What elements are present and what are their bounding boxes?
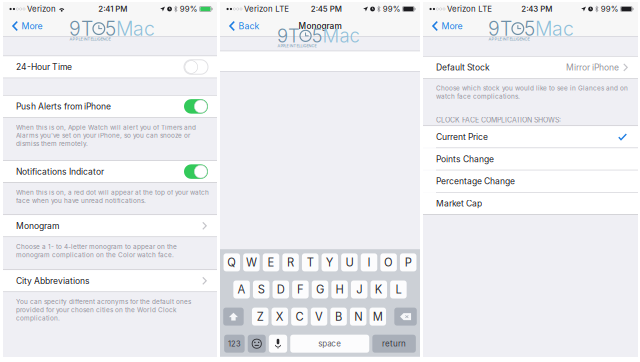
staticText: LTE xyxy=(275,4,289,14)
staticText: When this is on, a red dot will appear a… xyxy=(16,189,209,196)
staticText: K xyxy=(375,283,383,296)
staticText: watch face complications. xyxy=(436,92,520,100)
button[interactable]: Monogram xyxy=(3,215,217,236)
staticText: City Abbreviations xyxy=(16,276,90,286)
staticText: 9T xyxy=(277,25,300,47)
button[interactable]: City Abbreviations xyxy=(3,270,217,291)
button[interactable]: M xyxy=(369,308,386,326)
staticText: Monogram xyxy=(298,21,341,31)
staticText: Mac xyxy=(322,25,359,47)
staticText: Market Cap xyxy=(436,198,482,209)
staticText: Default Stock xyxy=(436,62,490,72)
button[interactable]: Emoji xyxy=(248,335,266,353)
button[interactable]: F xyxy=(292,280,309,298)
button[interactable]: C xyxy=(291,308,308,326)
button[interactable]: Dictation xyxy=(269,335,287,353)
staticText: 24-Hour Time xyxy=(16,62,72,72)
staticText: 99% xyxy=(383,4,401,14)
staticText: 99% xyxy=(180,4,198,14)
staticText: J xyxy=(356,283,362,296)
button[interactable]: Market Cap xyxy=(423,193,638,214)
button[interactable]: A xyxy=(233,280,250,298)
staticText: Y xyxy=(326,256,334,269)
staticText: V xyxy=(315,310,323,323)
staticText: face when you have unread notifications. xyxy=(16,197,146,204)
button[interactable]: B xyxy=(330,308,347,326)
staticText: 5 xyxy=(524,17,535,40)
staticText: E xyxy=(267,256,274,269)
staticText: When this is on, Apple Watch will alert … xyxy=(16,123,196,131)
button[interactable]: X xyxy=(272,308,288,326)
staticText: Percentage Change xyxy=(436,176,515,186)
button[interactable]: E xyxy=(263,253,279,271)
staticText: G xyxy=(316,283,324,296)
button[interactable]: D xyxy=(273,280,289,298)
staticText: 2:45 PM xyxy=(311,4,342,14)
button[interactable]: N xyxy=(350,308,366,326)
button[interactable]: 24-Hour Time xyxy=(3,56,217,78)
button[interactable]: 123 xyxy=(224,335,245,353)
staticText: return xyxy=(382,339,406,349)
staticText: O xyxy=(384,256,393,269)
button[interactable]: W xyxy=(243,253,260,271)
button[interactable]: Points Change xyxy=(423,148,638,170)
staticText: Monogram xyxy=(16,221,59,231)
staticText: I xyxy=(367,256,370,269)
button[interactable]: O xyxy=(380,253,397,271)
button[interactable]: U xyxy=(341,253,358,271)
button[interactable]: Percentage Change xyxy=(423,170,638,192)
staticText: Z xyxy=(257,310,264,323)
staticText: D xyxy=(277,283,285,296)
button[interactable]: J xyxy=(351,280,367,298)
staticText: M xyxy=(373,310,383,323)
staticText: 9T xyxy=(69,17,93,40)
staticText: 99% xyxy=(601,4,619,14)
staticText: You can specify different acronyms for t… xyxy=(16,298,191,305)
staticText: Verizon xyxy=(447,4,476,14)
button[interactable]: Back xyxy=(220,16,266,36)
button[interactable]: T xyxy=(302,253,318,271)
staticText: Mac xyxy=(116,17,155,40)
button[interactable]: I xyxy=(361,253,377,271)
button[interactable]: Push Alerts from iPhone xyxy=(3,96,217,117)
staticText: 2:41 PM xyxy=(98,4,127,14)
button[interactable]: P xyxy=(400,253,416,271)
button[interactable]: Shift xyxy=(223,308,244,326)
button[interactable]: V xyxy=(311,308,327,326)
staticText: L xyxy=(395,283,401,296)
staticText: 9T xyxy=(488,17,512,40)
button[interactable]: Default Stock xyxy=(423,57,638,78)
staticText: Verizon xyxy=(244,4,273,14)
staticText: Mac xyxy=(535,17,574,40)
staticText: More xyxy=(22,21,43,31)
staticText: space xyxy=(318,339,341,349)
button[interactable]: Current Price xyxy=(423,126,638,148)
staticText: T xyxy=(307,256,314,269)
staticText: Notifications Indicator xyxy=(16,166,104,177)
button[interactable]: Z xyxy=(252,308,268,326)
staticText: Verizon xyxy=(27,4,56,14)
button[interactable]: H xyxy=(331,280,348,298)
staticText: LTE xyxy=(478,4,492,14)
staticText: APPLE INTELLIGENCE xyxy=(277,43,316,48)
button[interactable]: Q xyxy=(223,253,240,271)
button[interactable]: L xyxy=(390,280,407,298)
staticText: monogram complication on the Color watch… xyxy=(16,251,174,259)
staticText: More xyxy=(442,21,463,31)
button[interactable]: Notifications Indicator xyxy=(3,161,217,182)
staticText: Q xyxy=(227,256,236,269)
staticText: A xyxy=(238,283,246,296)
button[interactable]: More xyxy=(3,16,49,36)
staticText: 2:43 PM xyxy=(521,4,552,14)
button[interactable]: R xyxy=(282,253,299,271)
staticText: U xyxy=(345,256,353,269)
button[interactable]: More xyxy=(423,16,469,36)
button[interactable]: Y xyxy=(321,253,338,271)
button[interactable]: space xyxy=(290,335,369,353)
button[interactable]: K xyxy=(370,280,387,298)
staticText: X xyxy=(276,310,284,323)
button[interactable]: G xyxy=(312,280,328,298)
button[interactable]: S xyxy=(253,280,269,298)
button[interactable]: return xyxy=(372,335,416,353)
button[interactable]: Delete xyxy=(394,308,417,326)
